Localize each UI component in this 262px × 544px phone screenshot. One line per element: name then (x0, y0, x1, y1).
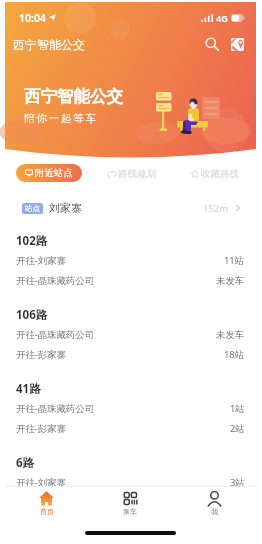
staticText: 西宁智能公交 (13, 37, 85, 52)
button[interactable]: 附近站点 (16, 164, 82, 182)
staticText: 1站 (230, 402, 245, 415)
staticText: 站点 (25, 204, 40, 213)
button[interactable]: 站点 (5, 198, 256, 218)
button[interactable]: Search (202, 34, 222, 54)
staticText: 刘家寨 (49, 201, 82, 215)
button[interactable]: 106路 (5, 307, 256, 361)
staticText: 4G (216, 12, 228, 24)
button[interactable]: 首页 (5, 489, 88, 518)
staticText: 2站 (230, 422, 245, 435)
button[interactable]: 6路 (5, 455, 256, 489)
staticText: 开往-晶珠藏药公司 (16, 328, 95, 341)
button[interactable]: 收藏路线 (187, 165, 243, 183)
staticText: 未发车 (216, 329, 245, 341)
staticText: 收藏路线 (201, 168, 239, 180)
staticText: 41路 (16, 381, 41, 396)
staticText: 乘车 (123, 507, 137, 516)
staticText: 开往-刘家寨 (16, 254, 66, 267)
staticText: 我 (211, 507, 218, 516)
staticText: 开往-彭家寨 (16, 348, 66, 361)
staticText: 6路 (16, 455, 35, 470)
staticText: 11站 (224, 254, 245, 267)
staticText: 152m (203, 202, 229, 215)
staticText: 路线规划 (118, 168, 156, 180)
staticText: 首页 (40, 507, 54, 516)
staticText: 开往-刘家寨 (16, 476, 66, 489)
staticText: 陪你一起等车 (24, 112, 98, 125)
staticText: 106路 (16, 307, 48, 322)
staticText: 10:04 (19, 11, 46, 25)
staticText: 西宁智能公交 (24, 86, 123, 107)
button[interactable]: 41路 (5, 381, 256, 435)
button[interactable]: 路线规划 (104, 165, 160, 183)
staticText: 3站 (230, 476, 245, 489)
button[interactable]: 我 (172, 489, 256, 518)
staticText: 开往-晶珠藏药公司 (16, 402, 95, 415)
button[interactable]: 102路 (5, 233, 256, 287)
staticText: 102路 (16, 233, 48, 248)
staticText: 开往-彭家寨 (16, 422, 66, 435)
staticText: 未发车 (216, 275, 245, 287)
button[interactable]: Map (227, 34, 247, 54)
button[interactable]: 乘车 (88, 489, 172, 518)
staticText: 开往-晶珠藏药公司 (16, 274, 95, 287)
staticText: 18站 (224, 348, 245, 361)
staticText: 附近站点 (35, 167, 73, 179)
